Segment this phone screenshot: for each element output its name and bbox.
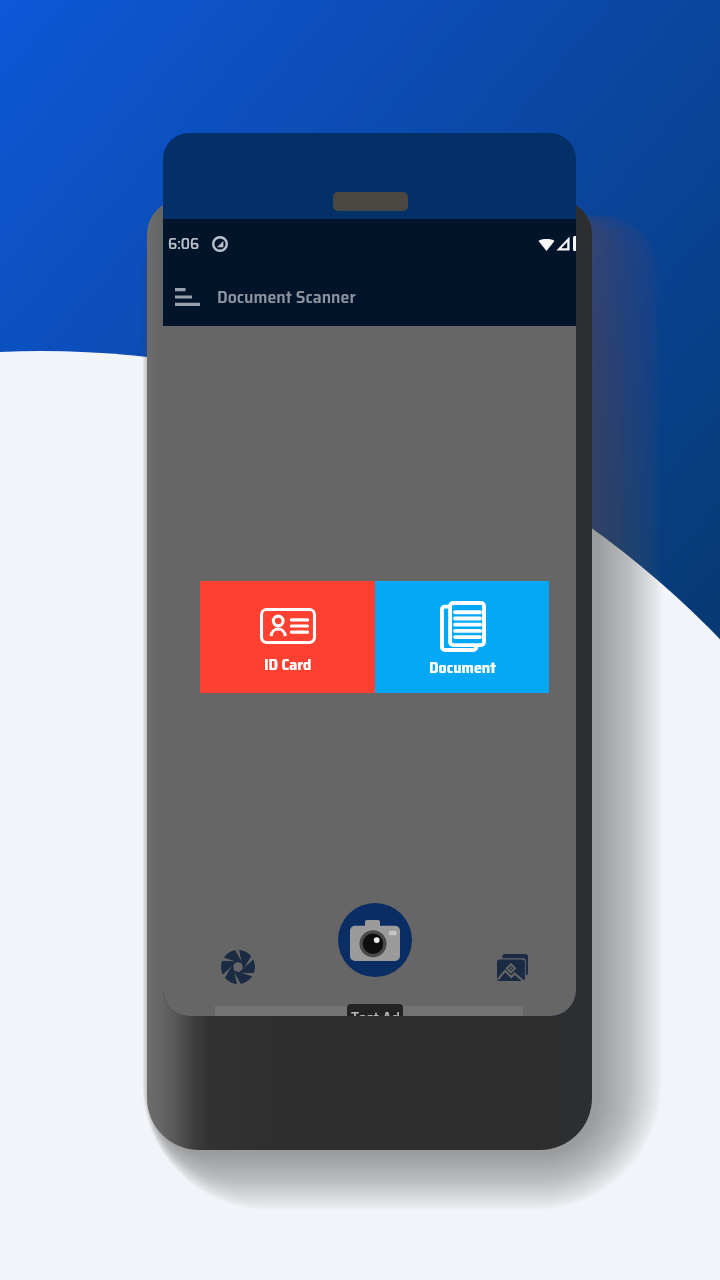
button[interactable]: ID Card <box>200 581 375 693</box>
button[interactable]: Gallery <box>492 947 532 987</box>
button[interactable]: Document <box>375 581 549 693</box>
staticText: ID Card <box>264 652 312 677</box>
button[interactable]: Scan with camera <box>338 903 412 977</box>
button[interactable]: Open navigation menu <box>165 275 209 319</box>
staticText: Document Scanner <box>217 283 356 311</box>
staticText: Test Ad <box>351 1005 400 1016</box>
staticText: 6:06 <box>168 231 200 256</box>
button[interactable]: Camera shutter <box>218 947 258 987</box>
staticText: Document <box>429 655 496 680</box>
